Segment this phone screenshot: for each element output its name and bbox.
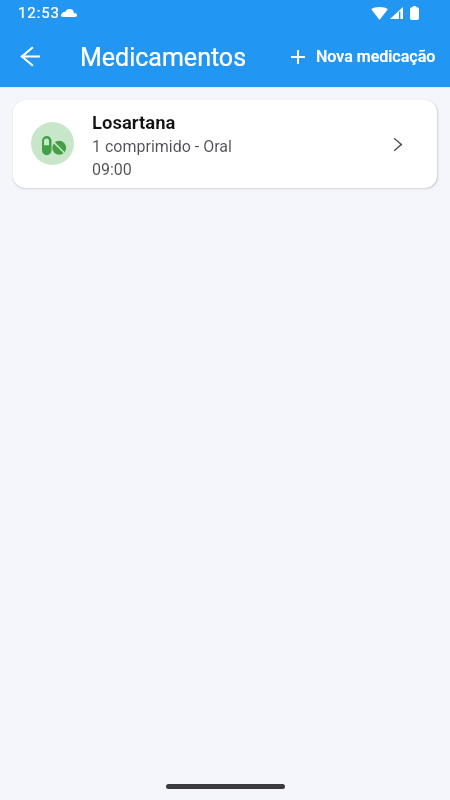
staticText: 12:53 [18, 4, 60, 22]
button[interactable]: Back [6, 32, 55, 81]
staticText: Nova medicação [316, 47, 436, 66]
button[interactable]: Losartana [13, 100, 437, 188]
button[interactable]: Nova medicação [283, 39, 444, 74]
staticText: 1 comprimido - Oral [92, 137, 232, 156]
staticText: 09:00 [92, 160, 132, 179]
staticText: Losartana [92, 112, 176, 134]
staticText: Medicamentos [80, 43, 247, 72]
